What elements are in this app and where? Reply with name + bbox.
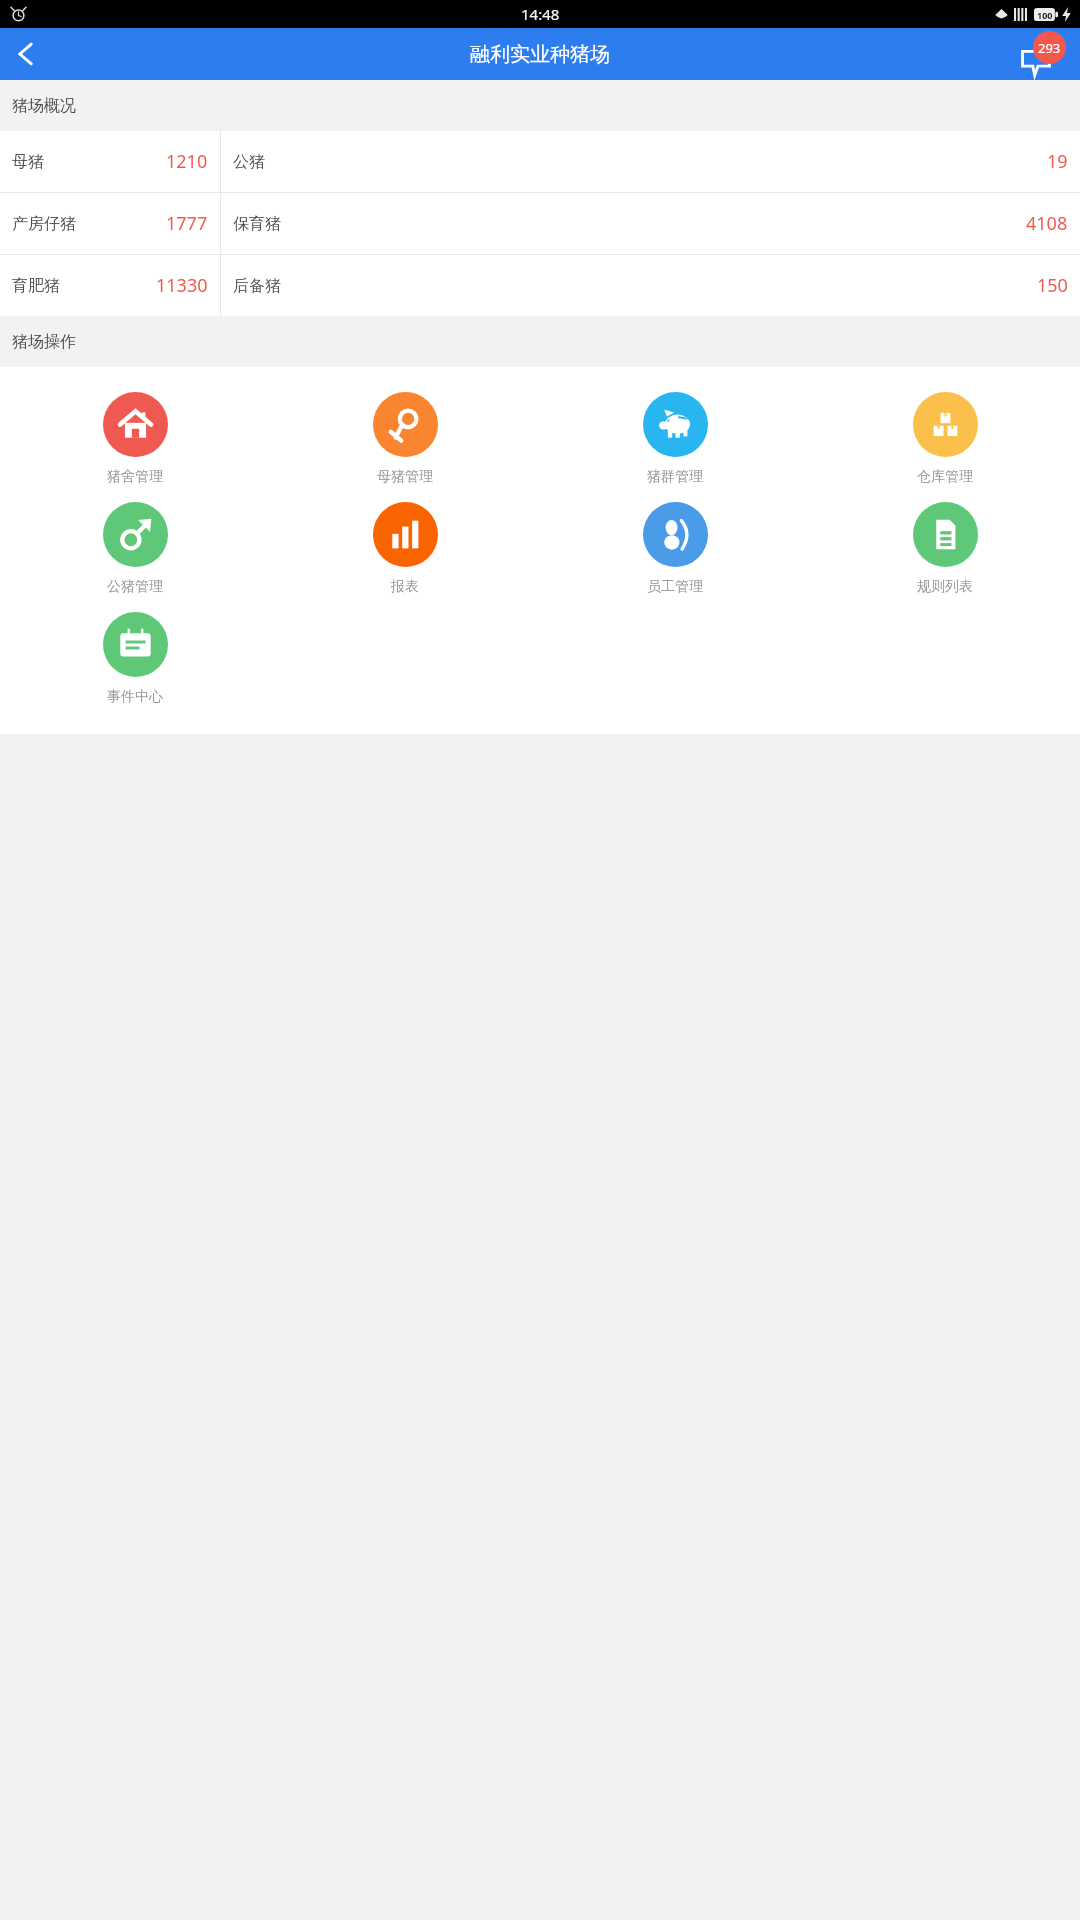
staticText: 1777 [166,211,208,236]
button[interactable]: 猪群管理 [540,384,810,494]
button[interactable]: 母猪 [0,131,220,192]
staticText: 仓库管理 [917,468,973,486]
staticText: 150 [1037,273,1068,298]
staticText: 14:48 [521,4,560,24]
button[interactable]: 公猪 [221,131,1080,192]
staticText: 猪场概况 [12,96,76,116]
staticText: 猪舍管理 [107,468,163,486]
button[interactable]: 母猪管理 [270,384,540,494]
staticText: 11330 [156,273,208,298]
staticText: 293 [1038,39,1061,57]
staticText: 公猪 [233,152,265,172]
button[interactable]: 规则列表 [810,494,1080,604]
staticText: 员工管理 [647,578,703,596]
staticText: 产房仔猪 [12,214,76,234]
staticText: 事件中心 [107,688,163,706]
staticText: 报表 [391,578,419,596]
button[interactable]: 育肥猪 [0,255,220,316]
staticText: 母猪 [12,152,44,172]
staticText: 规则列表 [917,578,973,596]
staticText: 猪场操作 [12,332,76,352]
staticText: 1210 [166,149,208,174]
staticText: 母猪管理 [377,468,433,486]
button[interactable]: 后备猪 [221,255,1080,316]
staticText: 公猪管理 [107,578,163,596]
staticText: 100 [1037,9,1053,21]
button[interactable]: 猪舍管理 [0,384,270,494]
staticText: 4108 [1026,211,1068,236]
staticText: 猪群管理 [647,468,703,486]
button[interactable]: 事件中心 [0,604,270,714]
staticText: 育肥猪 [12,276,60,296]
button[interactable]: 仓库管理 [810,384,1080,494]
staticText: 后备猪 [233,276,281,296]
button[interactable]: 员工管理 [540,494,810,604]
staticText: 保育猪 [233,214,281,234]
button[interactable]: 产房仔猪 [0,193,220,254]
button[interactable]: 报表 [270,494,540,604]
staticText: 融利实业种猪场 [470,42,610,67]
button[interactable]: 公猪管理 [0,494,270,604]
staticText: 19 [1047,149,1068,174]
button[interactable]: Notifications [1020,31,1066,77]
button[interactable]: 保育猪 [221,193,1080,254]
button[interactable]: Back [0,28,52,80]
